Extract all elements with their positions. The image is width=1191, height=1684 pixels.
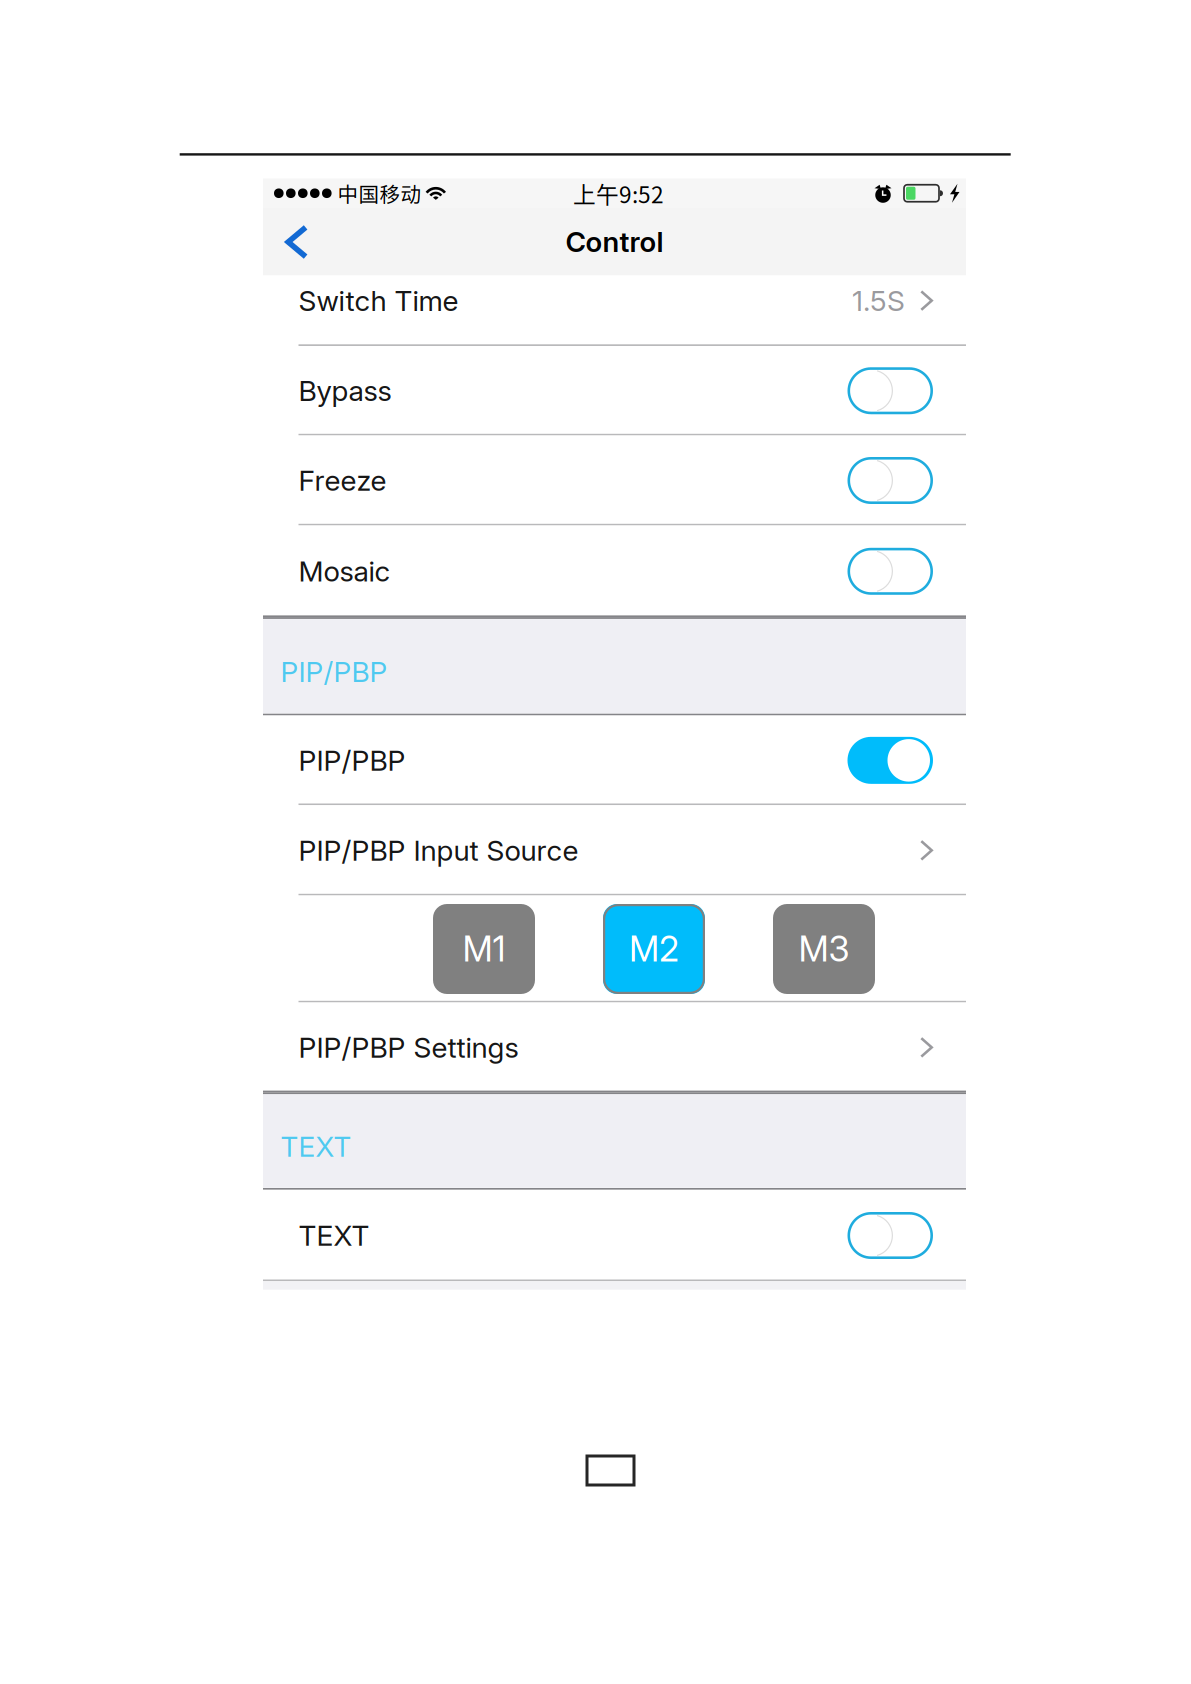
staticText: M3 bbox=[798, 928, 849, 970]
staticText: TEXT bbox=[298, 1218, 369, 1253]
staticText: PIP/PBP Settings bbox=[298, 1030, 518, 1064]
staticText: Control bbox=[565, 225, 663, 259]
staticText: 1.5S bbox=[852, 283, 905, 318]
button[interactable]: PIP/PBP Input Source bbox=[263, 805, 966, 895]
staticText: Mosaic bbox=[298, 554, 390, 588]
button[interactable]: M1 bbox=[433, 904, 535, 994]
button[interactable]: Bypass bbox=[847, 367, 933, 414]
staticText: Freeze bbox=[298, 463, 386, 498]
staticText: PIP/PBP Input Source bbox=[298, 833, 578, 867]
button[interactable]: PIP/PBP bbox=[847, 737, 933, 784]
button[interactable]: Back bbox=[263, 209, 324, 275]
staticText: PIP/PBP bbox=[298, 743, 405, 777]
button[interactable]: M2 bbox=[603, 904, 705, 994]
button[interactable]: PIP/PBP Settings bbox=[263, 1002, 966, 1092]
staticText: M1 bbox=[462, 928, 505, 970]
staticText: 上午9:52 bbox=[573, 177, 664, 210]
button[interactable]: TEXT bbox=[847, 1212, 933, 1259]
button[interactable]: Freeze bbox=[847, 457, 933, 504]
button[interactable]: Mosaic bbox=[847, 548, 933, 595]
staticText: TEXT bbox=[280, 1130, 351, 1163]
staticText: Switch Time bbox=[298, 283, 458, 318]
staticText: PIP/PBP bbox=[280, 655, 387, 689]
button[interactable]: M3 bbox=[773, 904, 875, 994]
staticText: M2 bbox=[629, 928, 679, 970]
staticText: 中国移动 bbox=[338, 178, 422, 208]
button[interactable]: Switch Time bbox=[263, 275, 966, 346]
staticText: Bypass bbox=[298, 374, 391, 408]
